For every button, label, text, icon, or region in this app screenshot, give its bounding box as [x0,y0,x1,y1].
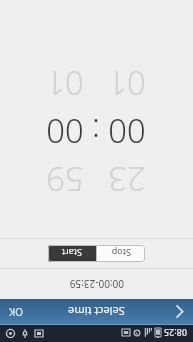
staticText: 01 [108,61,146,106]
button[interactable]: Back [167,299,193,325]
staticText: 00:00-23:59 [69,277,124,291]
button[interactable]: 01 [105,61,149,106]
staticText: 08:25 [163,327,187,339]
staticText: : [91,109,100,154]
staticText: 23 [108,157,146,202]
staticText: 00 [46,109,84,154]
button[interactable]: 59 [43,157,87,202]
staticText: 59 [46,157,84,202]
staticText: 00 [108,109,146,154]
button[interactable]: 23 [105,157,149,202]
button[interactable]: 00 [105,109,149,154]
staticText: Start [61,247,82,259]
button[interactable]: 00 [43,109,87,154]
button[interactable]: Stop [97,245,145,262]
staticText: Stop [111,247,131,259]
staticText: OK [9,305,23,319]
staticText: Select time [68,304,125,319]
button[interactable]: Start [48,245,96,262]
button[interactable]: 01 [43,61,87,106]
button[interactable]: OK [0,299,32,325]
staticText: 01 [46,61,84,106]
